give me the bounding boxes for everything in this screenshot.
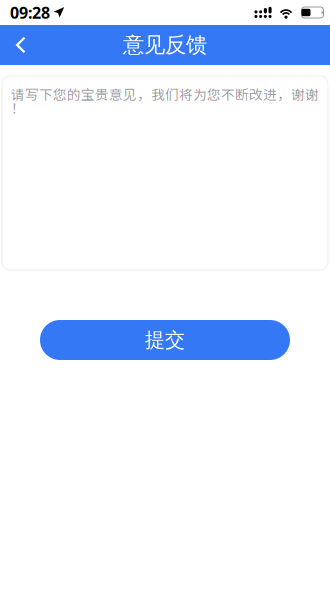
staticText: 请写下您的宝贵意见，我们将为您不断改进，谢谢	[11, 84, 319, 104]
staticText: 意见反馈	[123, 32, 207, 58]
button[interactable]: Back	[0, 25, 42, 65]
staticText: 提交	[145, 328, 185, 352]
button[interactable]: 提交	[40, 320, 290, 360]
staticText: ！	[11, 98, 25, 117]
staticText: 09:28	[10, 2, 50, 23]
